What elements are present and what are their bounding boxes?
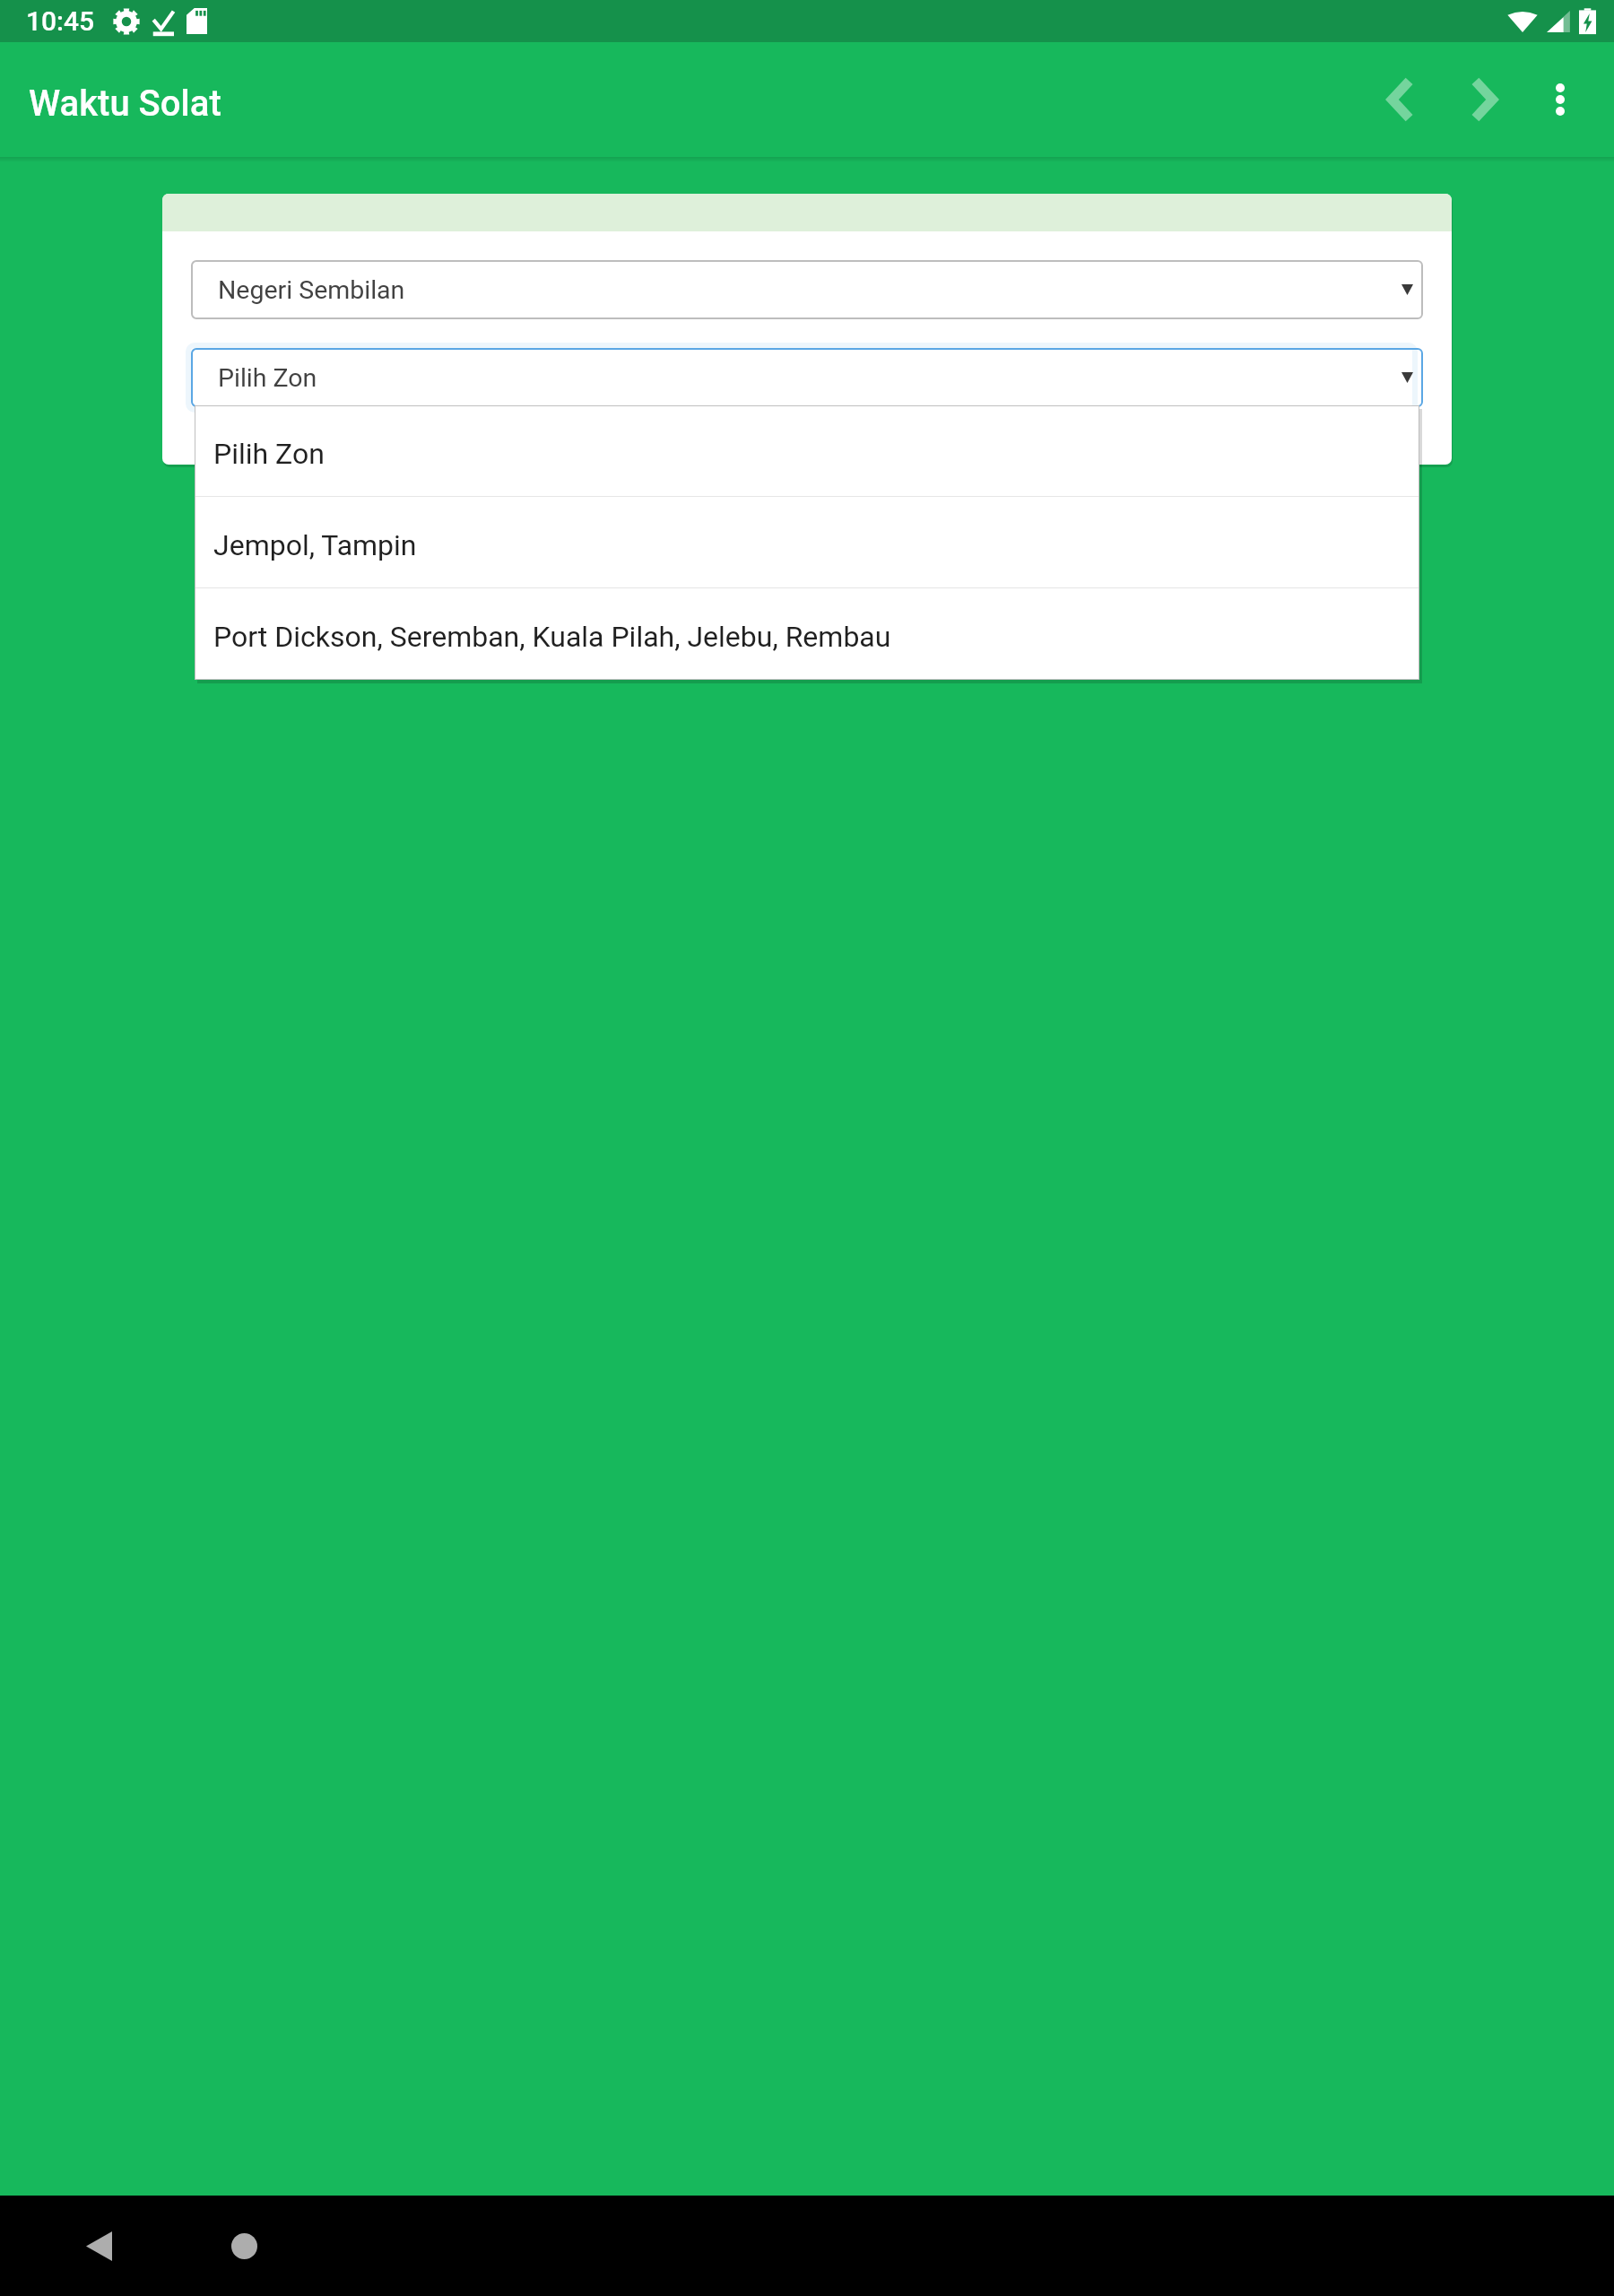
button[interactable]: More options — [1517, 42, 1603, 157]
staticText: Negeri Sembilan — [218, 275, 405, 305]
button[interactable]: Pilih Zon — [195, 405, 1419, 496]
staticText: Jempol, Tampin — [213, 528, 417, 562]
button[interactable]: Back — [45, 2196, 152, 2296]
button[interactable]: Next day — [1441, 42, 1527, 157]
button[interactable]: Previous day — [1358, 42, 1444, 157]
staticText: Pilih Zon — [213, 437, 325, 471]
button[interactable]: Jempol, Tampin — [195, 497, 1419, 587]
staticText: 10:45 — [26, 5, 95, 37]
staticText: Pilih Zon — [218, 363, 317, 393]
button[interactable]: Negeri Sembilan — [191, 260, 1423, 319]
button[interactable]: Pilih Zon — [191, 348, 1423, 407]
button[interactable]: Port Dickson, Seremban, Kuala Pilah, Jel… — [195, 588, 1419, 679]
staticText: Port Dickson, Seremban, Kuala Pilah, Jel… — [213, 620, 891, 654]
button[interactable]: Home — [190, 2196, 298, 2296]
staticText: Waktu Solat — [29, 83, 221, 125]
